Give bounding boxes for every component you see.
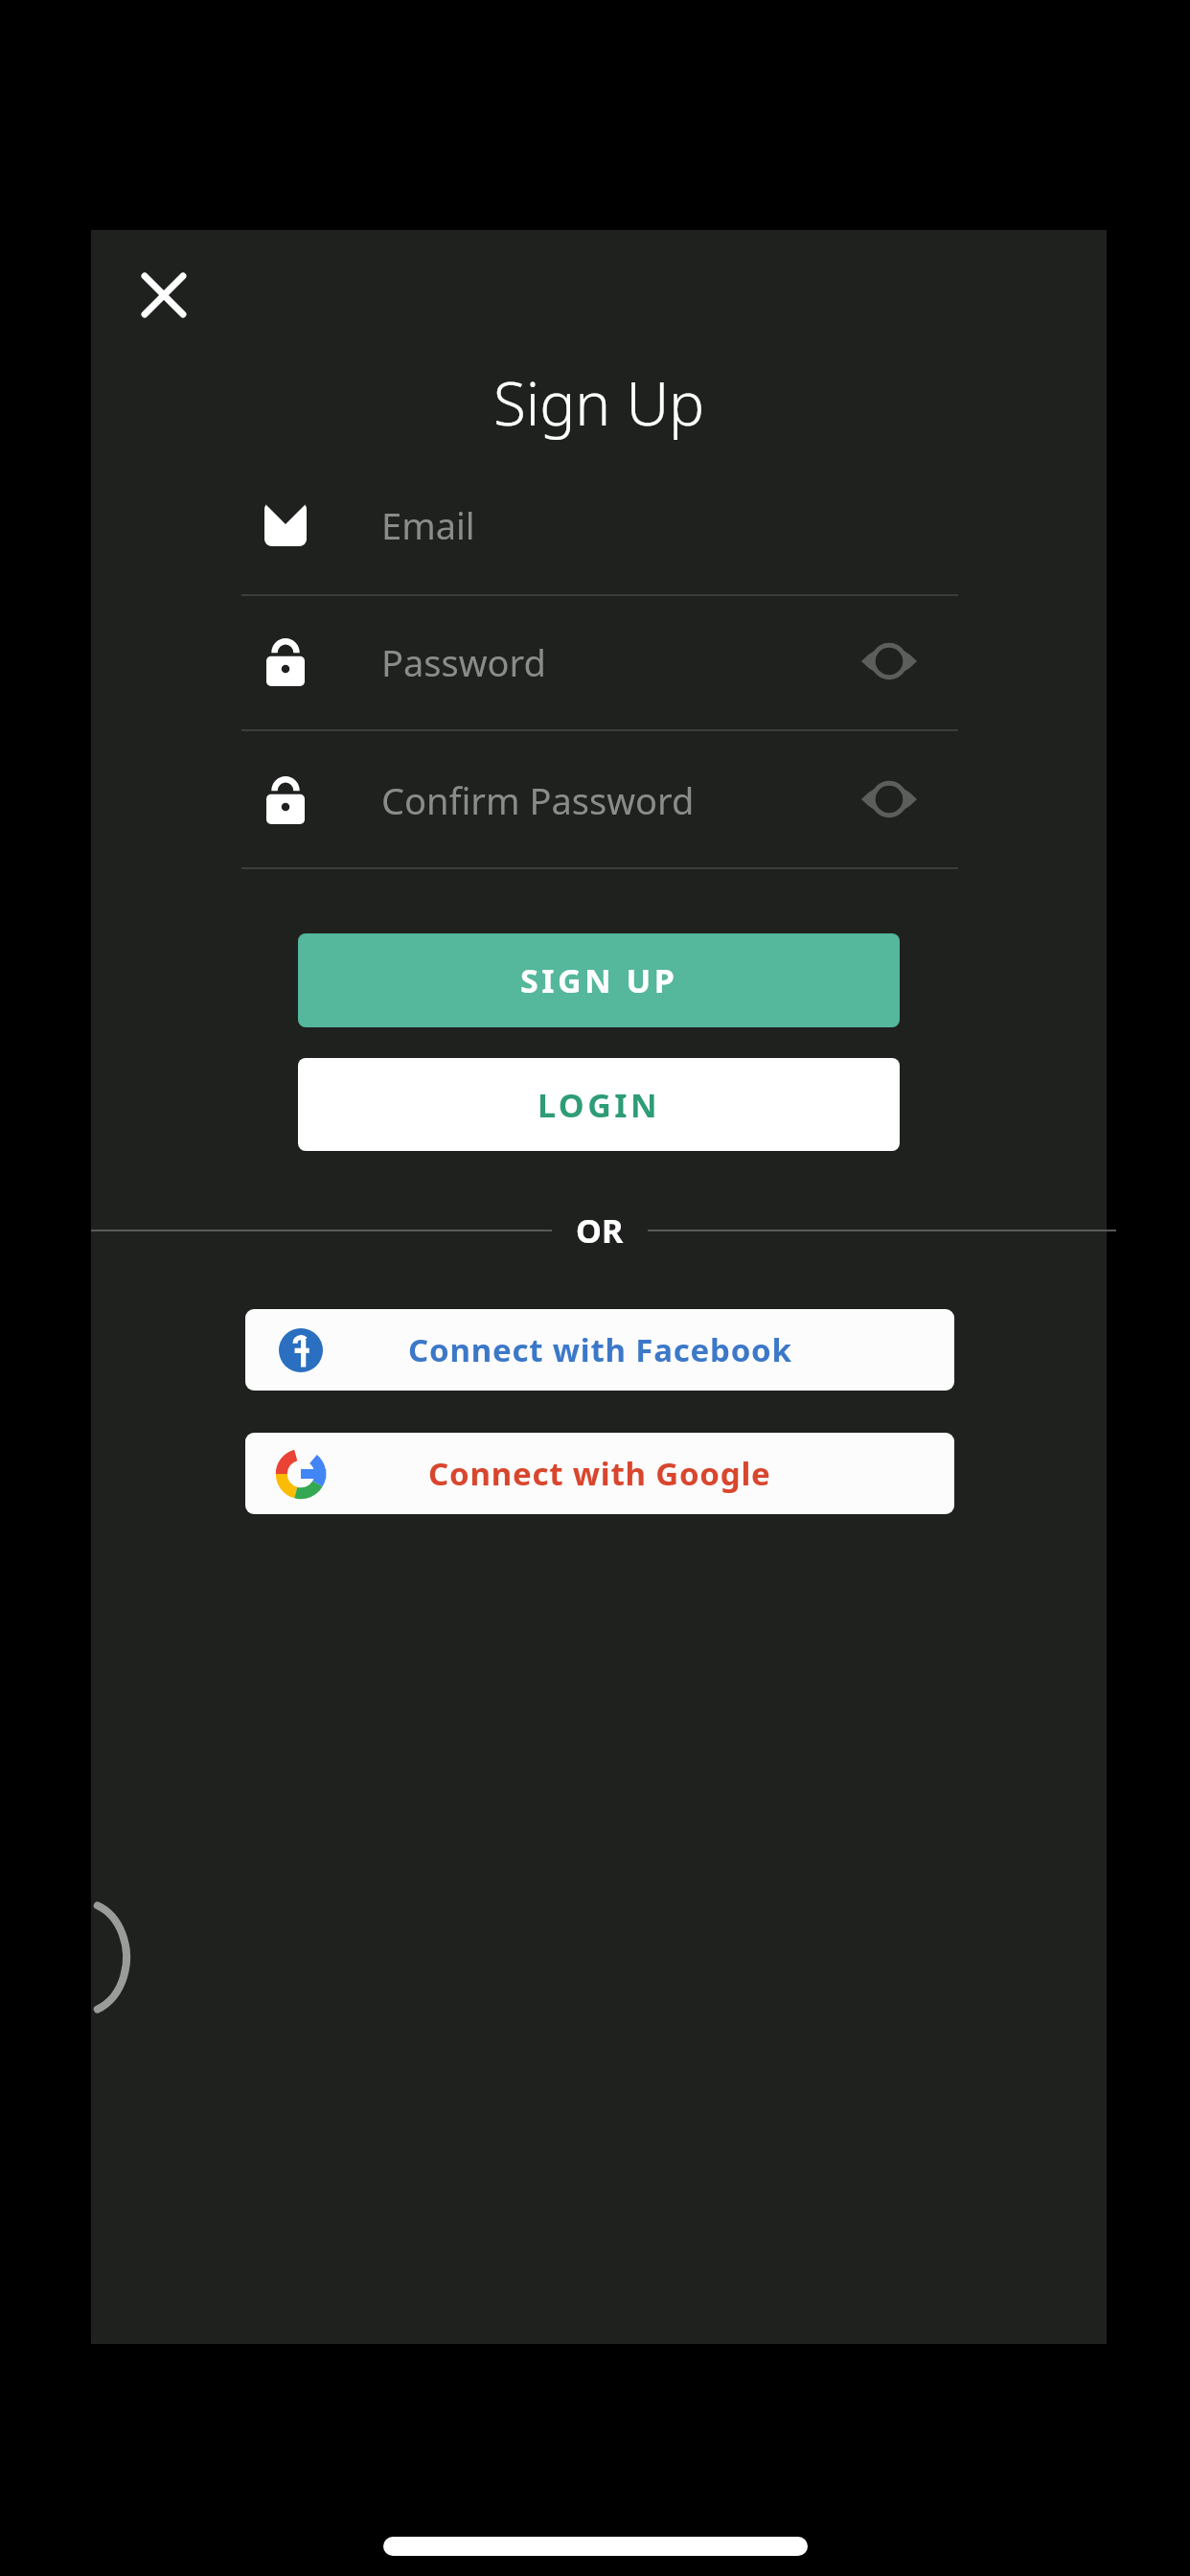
button[interactable]: LOGIN bbox=[298, 1058, 900, 1151]
staticText: Confirm Password bbox=[381, 775, 695, 825]
button[interactable] bbox=[241, 471, 958, 576]
staticText: Connect with Google bbox=[428, 1452, 771, 1495]
staticText: Password bbox=[381, 637, 546, 687]
button[interactable]: SIGN UP bbox=[298, 933, 900, 1027]
staticText: SIGN UP bbox=[520, 958, 678, 1002]
staticText: Email bbox=[381, 500, 475, 550]
staticText: LOGIN bbox=[538, 1083, 661, 1127]
button[interactable]: Close bbox=[116, 247, 212, 343]
staticText: OR bbox=[576, 1208, 624, 1253]
button[interactable] bbox=[241, 746, 958, 851]
button[interactable]: Connect with Facebook bbox=[245, 1309, 954, 1391]
button[interactable]: Connect with Google bbox=[245, 1433, 954, 1514]
button[interactable] bbox=[241, 608, 958, 713]
staticText: Connect with Facebook bbox=[408, 1328, 792, 1371]
button[interactable]: Show password bbox=[847, 757, 931, 841]
button[interactable]: Show password bbox=[847, 619, 931, 703]
staticText: Sign Up bbox=[493, 362, 705, 443]
